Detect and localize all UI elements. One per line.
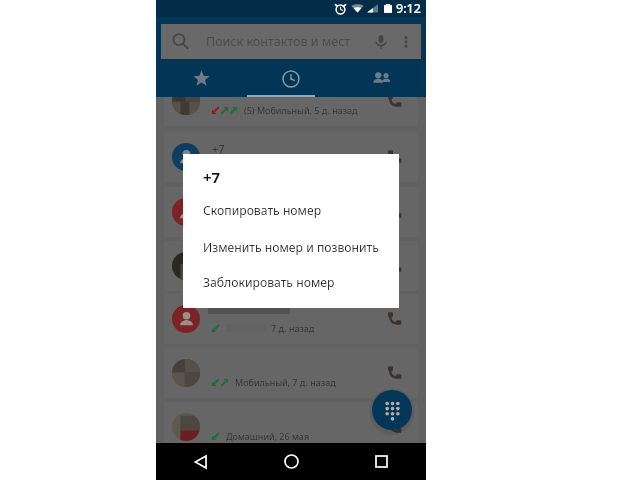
button[interactable]: +7 xyxy=(203,167,221,187)
staticText: +7 xyxy=(203,167,221,187)
button[interactable]: Recents xyxy=(336,443,426,480)
button[interactable]: Call xyxy=(380,97,408,114)
staticText: Мобильный, 7 д. назад xyxy=(235,376,336,388)
button[interactable]: (5) Мобильный, 5 д. назад xyxy=(164,97,418,126)
button[interactable]: +7 xyxy=(164,132,418,182)
button[interactable]: 7 д. назад xyxy=(164,294,418,344)
staticText: 9:12 xyxy=(396,0,421,17)
button[interactable]: Recents xyxy=(246,60,336,97)
button[interactable]: Call xyxy=(380,412,408,440)
button[interactable]: Call xyxy=(380,251,408,279)
button[interactable]: Call xyxy=(164,241,418,291)
staticText: Домашний, 26 мая xyxy=(226,430,310,442)
staticText: 7 д. назад xyxy=(271,322,315,334)
button[interactable]: Call xyxy=(380,142,408,170)
button[interactable]: Back xyxy=(156,443,246,480)
staticText: Заблокировать номер xyxy=(203,274,335,291)
button[interactable]: Скопировать номер xyxy=(183,193,399,227)
button[interactable]: Home xyxy=(246,443,336,480)
button[interactable]: Open dialpad xyxy=(372,390,412,430)
button[interactable]: Favourites xyxy=(156,60,246,97)
button[interactable]: Call xyxy=(164,187,418,237)
staticText: Изменить номер и позвонить xyxy=(203,239,379,256)
button[interactable]: More options xyxy=(395,31,417,53)
staticText: Скопировать номер xyxy=(203,202,322,219)
button[interactable]: Заблокировать номер xyxy=(183,265,399,299)
button[interactable]: Изменить номер и позвонить xyxy=(183,230,399,264)
button[interactable]: Домашний, 26 мая xyxy=(164,402,418,452)
button[interactable]: Мобильный, 7 д. назад xyxy=(164,348,418,398)
staticText: (5) Мобильный, 5 д. назад xyxy=(244,104,358,116)
button[interactable]: Call xyxy=(380,358,408,386)
staticText: +7 xyxy=(212,141,225,156)
button[interactable]: Call xyxy=(380,197,408,225)
button[interactable]: Voice search xyxy=(369,30,393,54)
button[interactable]: Поиск контактов и мест xyxy=(161,24,421,59)
button[interactable]: Contacts xyxy=(336,60,426,97)
button[interactable]: Call xyxy=(380,304,408,332)
staticText: Поиск контактов и мест xyxy=(206,33,351,50)
